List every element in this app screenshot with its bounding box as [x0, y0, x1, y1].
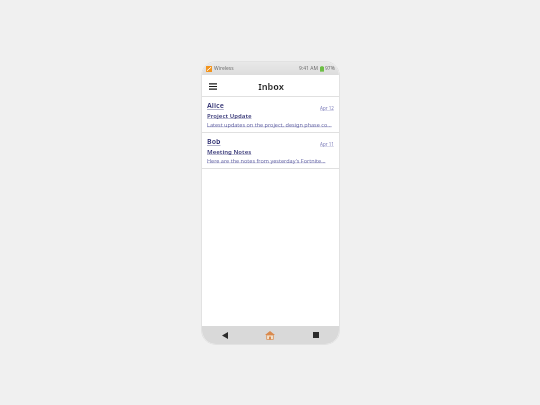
staticText: 9:41 AM: [299, 65, 318, 72]
staticText: 97%: [325, 65, 335, 72]
button[interactable]: Alice: [202, 97, 339, 132]
staticText: Alice: [207, 101, 224, 111]
staticText: Inbox: [258, 80, 284, 92]
staticText: Here are the notes from yesterday's Fort…: [207, 157, 326, 164]
button[interactable]: Bob: [202, 133, 339, 168]
button[interactable]: Open navigation menu: [206, 79, 220, 93]
staticText: Project Update: [207, 112, 252, 120]
staticText: Meeting Notes: [207, 148, 252, 156]
staticText: Apr 12: [320, 105, 334, 111]
staticText: Apr 11: [320, 141, 334, 147]
staticText: Wireless: [214, 65, 234, 72]
button[interactable]: Back: [202, 326, 247, 344]
button[interactable]: Recent apps: [293, 326, 339, 344]
staticText: Latest updates on the project, design ph…: [207, 121, 332, 128]
button[interactable]: Home: [247, 326, 293, 344]
staticText: Bob: [207, 137, 221, 147]
